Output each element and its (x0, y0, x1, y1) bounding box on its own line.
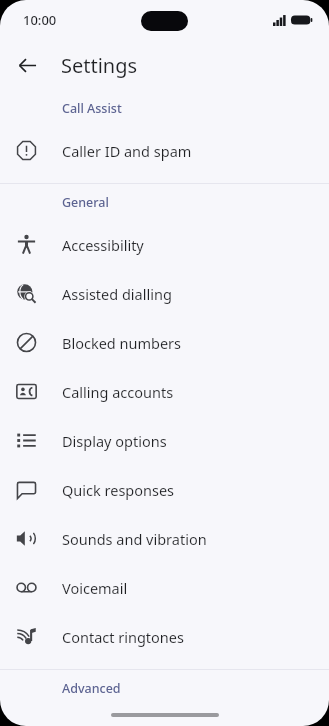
staticText: Blocked numbers (62, 333, 182, 353)
button[interactable]: Back (10, 48, 44, 82)
staticText: General (62, 194, 109, 211)
staticText: Caller ID and spam (62, 141, 192, 161)
button[interactable]: Quick responses (0, 465, 329, 514)
button[interactable]: Caller ID and spam (0, 126, 329, 175)
staticText: Voicemail (62, 578, 128, 598)
button[interactable]: Contact ringtones (0, 612, 329, 661)
staticText: Display options (62, 431, 167, 451)
staticText: 10:00 (23, 11, 57, 29)
button[interactable]: Blocked numbers (0, 318, 329, 367)
button[interactable]: Accessibility (0, 220, 329, 269)
button[interactable]: Voicemail (0, 563, 329, 612)
staticText: Contact ringtones (62, 627, 184, 647)
staticText: Accessibility (62, 235, 144, 255)
staticText: Settings (61, 52, 138, 79)
staticText: Quick responses (62, 480, 175, 500)
button[interactable]: Calling accounts (0, 367, 329, 416)
button[interactable]: Sounds and vibration (0, 514, 329, 563)
button[interactable]: Display options (0, 416, 329, 465)
button[interactable]: Assisted dialling (0, 269, 329, 318)
staticText: Assisted dialling (62, 284, 172, 304)
staticText: Sounds and vibration (62, 529, 207, 549)
staticText: Advanced (62, 680, 121, 697)
staticText: Call Assist (62, 100, 122, 117)
staticText: Calling accounts (62, 382, 174, 402)
